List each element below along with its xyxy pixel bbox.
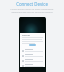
staticText: Lorem ipsum dolor sit amet consectetur a… xyxy=(5,8,59,14)
staticText: Connect Device xyxy=(16,1,48,7)
button[interactable]: Device entry xyxy=(22,49,43,52)
staticText: Settings xyxy=(22,34,30,37)
button[interactable]: Device entry xyxy=(22,59,43,62)
button[interactable]: Device entry xyxy=(22,64,43,67)
button[interactable]: Device entry xyxy=(22,54,43,57)
button[interactable]: Pair device xyxy=(29,44,36,46)
